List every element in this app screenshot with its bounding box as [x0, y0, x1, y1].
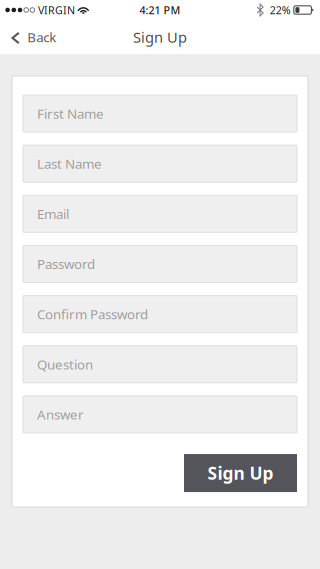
button[interactable]: Email	[23, 195, 297, 232]
button[interactable]: Back	[0, 20, 66, 54]
button[interactable]: Question	[23, 346, 297, 383]
staticText: 22%	[270, 3, 291, 17]
button[interactable]: Sign Up	[184, 454, 297, 492]
staticText: Back	[27, 28, 56, 46]
button[interactable]: First Name	[23, 95, 297, 132]
staticText: Last Name	[37, 155, 102, 172]
staticText: Password	[37, 255, 95, 273]
button[interactable]: Password	[23, 245, 297, 282]
staticText: Answer	[37, 405, 84, 423]
button[interactable]: Confirm Password	[23, 296, 297, 333]
staticText: Sign Up	[133, 27, 187, 47]
staticText: Sign Up	[207, 461, 273, 484]
staticText: 4:21 PM	[139, 3, 180, 17]
staticText: Email	[37, 205, 69, 223]
staticText: Question	[37, 355, 93, 373]
button[interactable]: Last Name	[23, 145, 297, 182]
staticText: First Name	[37, 105, 104, 122]
staticText: VIRGIN	[38, 3, 75, 17]
button[interactable]: Answer	[23, 396, 297, 433]
staticText: Confirm Password	[37, 305, 148, 323]
